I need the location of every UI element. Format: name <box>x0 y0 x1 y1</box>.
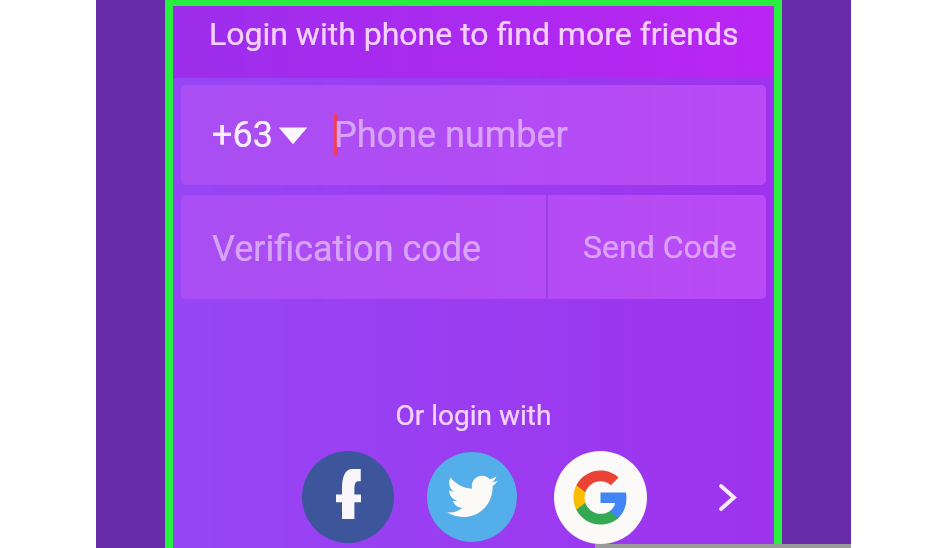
button[interactable]: Login with Twitter <box>427 452 517 542</box>
staticText: Send Code <box>583 228 737 266</box>
button[interactable]: +63 <box>181 85 766 185</box>
button[interactable]: Send Code <box>548 195 766 299</box>
button[interactable]: More login options <box>699 469 755 525</box>
button[interactable]: Login with Google <box>554 451 647 544</box>
button[interactable]: Login with Facebook <box>302 451 394 543</box>
staticText: Verification code <box>212 228 482 270</box>
staticText: Phone number <box>334 114 568 156</box>
staticText: Or login with <box>173 399 774 432</box>
button[interactable]: Verification code <box>181 195 546 299</box>
staticText: +63 <box>212 114 273 156</box>
staticText: Login with phone to find more friends <box>209 15 739 53</box>
